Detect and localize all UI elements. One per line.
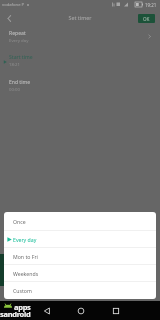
staticText: Every day bbox=[13, 236, 37, 243]
staticText: 00:00 bbox=[9, 86, 20, 92]
staticText: End time bbox=[9, 79, 31, 86]
button[interactable]: Custom bbox=[4, 282, 156, 299]
staticText: Custom bbox=[13, 287, 32, 294]
button[interactable]: OK bbox=[138, 14, 155, 23]
button[interactable]: Every day bbox=[4, 231, 156, 247]
staticText: Every day bbox=[9, 37, 29, 43]
staticText: OK bbox=[143, 16, 150, 22]
staticText: Mon to Fri bbox=[13, 253, 38, 260]
staticText: vodafone P bbox=[2, 2, 25, 8]
staticText: Once bbox=[13, 218, 26, 225]
button[interactable]: Once bbox=[4, 212, 156, 230]
button[interactable]: Back bbox=[40, 301, 53, 320]
staticText: Weekends bbox=[13, 270, 39, 277]
staticText: Start time bbox=[9, 54, 33, 61]
button[interactable]: Weekends bbox=[4, 265, 156, 281]
staticText: 19:21 bbox=[145, 2, 157, 8]
staticText: 18:21 bbox=[9, 61, 20, 67]
staticText: sandroid bbox=[0, 309, 31, 319]
staticText: Repeat bbox=[9, 30, 26, 37]
button[interactable]: Back bbox=[2, 11, 17, 26]
button[interactable]: Mon to Fri bbox=[4, 248, 156, 264]
staticText: Set timer bbox=[0, 14, 160, 21]
staticText: apps bbox=[14, 302, 31, 312]
button[interactable]: Recents bbox=[109, 301, 122, 320]
button[interactable]: Home bbox=[74, 301, 87, 320]
